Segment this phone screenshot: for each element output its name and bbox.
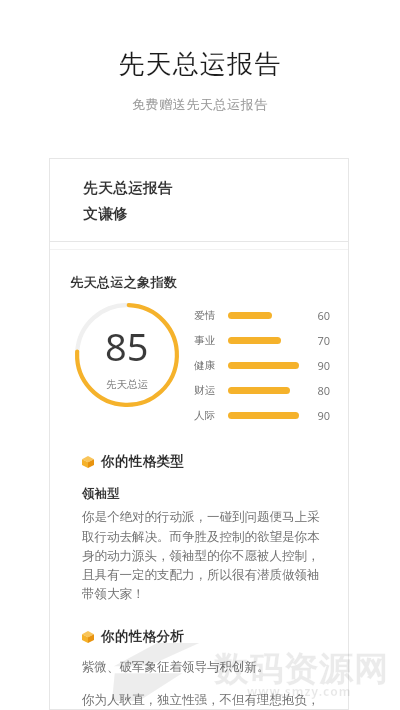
staticText: 先天总运报告: [83, 179, 173, 197]
button[interactable]: Section marker: [49, 628, 349, 645]
staticText: 90: [310, 408, 330, 423]
staticText: 爱情: [194, 309, 223, 322]
staticText: www.smzy.com: [247, 683, 352, 699]
staticText: 健康: [194, 359, 223, 372]
staticText: 85: [105, 320, 149, 372]
staticText: 先天总运之象指数: [70, 274, 178, 290]
staticText: 80: [310, 383, 330, 398]
staticText: 你为人耿直，独立性强，不但有理想抱负，也很: [82, 692, 321, 710]
staticText: 你是个绝对的行动派，一碰到问题便马上采取行动去解决。而争胜及控制的欲望是你本身的…: [82, 509, 321, 601]
staticText: 财运: [194, 384, 223, 397]
button[interactable]: 先天总运报告: [49, 158, 349, 710]
staticText: 90: [310, 358, 330, 373]
button[interactable]: Section marker: [49, 453, 349, 470]
staticText: 70: [310, 333, 330, 348]
staticText: 数码资源网: [213, 648, 388, 691]
staticText: 人际: [194, 409, 223, 422]
staticText: 领袖型: [82, 486, 120, 502]
staticText: 事业: [194, 334, 223, 347]
staticText: 紫微、破军象征着领导与积创新。: [82, 659, 270, 675]
other: Section marker: [82, 456, 94, 468]
staticText: 免费赠送先天总运报告: [0, 96, 400, 112]
staticText: 先天总运: [106, 378, 148, 391]
staticText: 先天总运报告: [0, 48, 400, 81]
staticText: 你的性格分析: [101, 628, 184, 645]
staticText: 60: [310, 308, 330, 323]
other: Section marker: [82, 631, 94, 643]
staticText: 你的性格类型: [101, 453, 184, 470]
staticText: 文谦修: [83, 205, 128, 223]
